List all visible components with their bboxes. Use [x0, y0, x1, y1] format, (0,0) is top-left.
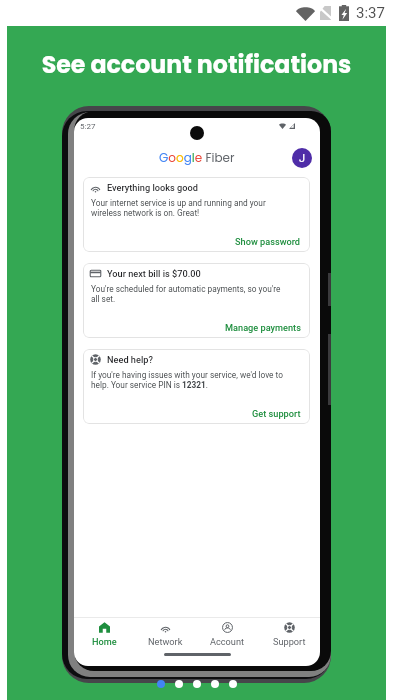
staticText: Account — [210, 636, 244, 647]
staticText: Google Fiber — [159, 149, 235, 166]
staticText: Everything looks good — [107, 182, 198, 193]
staticText: 3:37 — [356, 4, 385, 22]
staticText: J — [299, 152, 306, 165]
button[interactable]: Manage payments — [225, 322, 301, 333]
button[interactable]: Support — [258, 622, 320, 647]
button[interactable]: Account — [196, 622, 258, 647]
button[interactable]: Get support — [252, 408, 301, 419]
button[interactable]: Page 4 — [211, 680, 219, 688]
staticText: 5:27 — [80, 122, 96, 130]
staticText: If you're having issues with your servic… — [91, 370, 287, 390]
staticText: See account notifications — [7, 48, 386, 81]
staticText: Network — [148, 636, 183, 647]
button[interactable]: Account profile — [292, 148, 312, 168]
button[interactable]: Page 3 — [193, 680, 201, 688]
staticText: Support — [273, 636, 306, 647]
button[interactable]: Page 2 — [175, 680, 183, 688]
staticText: Your internet service is up and running … — [91, 198, 287, 218]
button[interactable]: Home — [74, 622, 135, 647]
button[interactable]: Page 5 — [229, 680, 237, 688]
button[interactable]: Show password — [235, 236, 301, 247]
staticText: Your next bill is $70.00 — [107, 268, 201, 279]
button[interactable]: Need help? — [83, 349, 310, 424]
button[interactable]: Page 1 — [157, 680, 165, 688]
button[interactable]: Your next bill is $70.00 — [83, 263, 310, 338]
staticText: You're scheduled for automatic payments,… — [91, 284, 287, 304]
button[interactable]: Everything looks good — [83, 177, 310, 252]
button[interactable]: Network — [135, 622, 196, 647]
staticText: Need help? — [107, 354, 153, 365]
staticText: Home — [92, 636, 117, 647]
